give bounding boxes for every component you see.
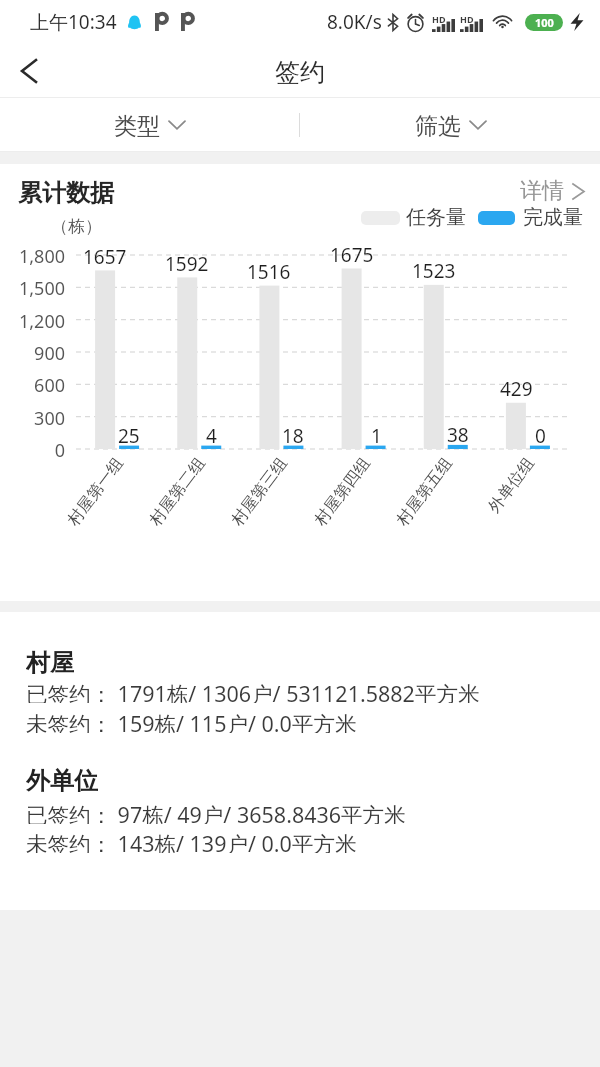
staticText: 村屋第二组	[145, 454, 208, 528]
staticText: 900	[34, 341, 65, 363]
staticText: （栋）	[51, 216, 102, 237]
staticText: 1523	[412, 258, 456, 282]
staticText: 累计数据	[18, 178, 114, 208]
staticText: 完成量	[523, 205, 583, 230]
staticText: 25	[118, 423, 140, 447]
staticText: 任务量	[406, 205, 466, 230]
staticText: 未签约： 159栋/ 115户/ 0.0平方米	[26, 709, 357, 733]
staticText: HD	[432, 13, 446, 25]
staticText: 上午10:34	[30, 9, 117, 35]
staticText: 0	[54, 438, 65, 460]
staticText: 村屋	[26, 648, 74, 674]
staticText: 外单位	[26, 766, 98, 792]
staticText: 600	[34, 373, 65, 395]
staticText: 签约	[275, 57, 325, 88]
staticText: 村屋第三组	[227, 454, 290, 528]
staticText: 类型	[114, 112, 160, 141]
staticText: 38	[447, 422, 469, 446]
staticText: 1	[371, 423, 382, 447]
staticText: 未签约： 143栋/ 139户/ 0.0平方米	[26, 829, 357, 853]
staticText: 外单位组	[484, 454, 537, 516]
staticText: 4	[206, 423, 217, 447]
staticText: 0	[535, 423, 546, 447]
staticText: 18	[282, 423, 304, 447]
staticText: 村屋第五组	[392, 454, 455, 528]
staticText: 1675	[330, 242, 374, 266]
staticText: 1657	[83, 244, 127, 268]
staticText: 1,800	[18, 244, 65, 266]
staticText: 1,500	[18, 276, 65, 298]
staticText: 已签约： 1791栋/ 1306户/ 531121.5882平方米	[26, 679, 480, 703]
staticText: 1592	[165, 251, 209, 275]
staticText: HD	[460, 13, 474, 25]
staticText: 300	[34, 406, 65, 428]
button[interactable]: Back	[0, 44, 58, 97]
staticText: 1516	[247, 259, 291, 283]
staticText: 村屋第一组	[63, 454, 126, 528]
button[interactable]: 详情	[510, 173, 600, 211]
staticText: 100	[535, 15, 554, 30]
staticText: 8.0K/s	[327, 9, 382, 35]
button[interactable]: 类型	[0, 98, 299, 151]
staticText: 详情	[520, 177, 564, 205]
staticText: 1,200	[18, 309, 65, 331]
button[interactable]: 筛选	[300, 98, 600, 151]
staticText: 429	[500, 376, 533, 400]
staticText: 筛选	[415, 112, 461, 141]
staticText: 村屋第四组	[310, 454, 373, 528]
staticText: 已签约： 97栋/ 49户/ 3658.8436平方米	[26, 800, 406, 824]
